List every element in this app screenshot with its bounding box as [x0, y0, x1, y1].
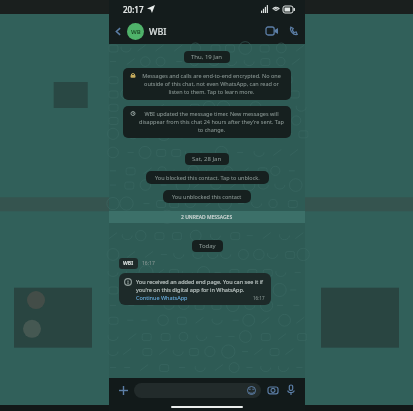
button[interactable]: Video call — [261, 18, 283, 44]
staticText: WBI updated the message timer. New messa… — [139, 110, 284, 134]
button[interactable]: You unblocked this contact — [172, 193, 242, 200]
button[interactable]: Back — [109, 18, 127, 44]
button[interactable]: WB — [127, 18, 261, 44]
staticText: 2 UNREAD MESSAGES — [181, 214, 233, 221]
staticText: 16:17 — [253, 295, 265, 301]
button[interactable]: Continue WhatsApp — [136, 294, 188, 301]
staticText: Today — [199, 242, 216, 250]
button[interactable]: Sat, 28 Jan — [192, 155, 222, 163]
staticText: Sat, 28 Jan — [192, 155, 222, 163]
button[interactable]: WBI updated the message timer. New messa… — [130, 110, 284, 134]
button[interactable] — [134, 383, 261, 398]
button[interactable]: You blocked this contact. Tap to unblock… — [155, 174, 260, 181]
staticText: You blocked this contact. Tap to unblock… — [155, 174, 260, 181]
button[interactable]: Voice call — [283, 18, 305, 44]
staticText: 16:17 — [142, 260, 155, 267]
staticText: You unblocked this contact — [172, 193, 242, 200]
staticText: Messages and calls are end-to-end encryp… — [139, 72, 284, 96]
button[interactable]: Messages and calls are end-to-end encryp… — [130, 72, 284, 96]
button[interactable]: Thu, 19 Jan — [191, 53, 223, 61]
button[interactable]: Attach — [115, 382, 131, 398]
staticText: 20:17 — [123, 4, 144, 15]
button[interactable]: Today — [199, 242, 216, 250]
button[interactable]: Voice message — [283, 382, 299, 398]
staticText: Thu, 19 Jan — [191, 53, 223, 61]
staticText: WB — [131, 28, 141, 36]
button[interactable]: Camera — [265, 382, 281, 398]
button[interactable]: You received an added end page. You can … — [124, 278, 265, 301]
staticText: WBI — [149, 25, 167, 37]
staticText: You received an added end page. You can … — [136, 278, 265, 294]
staticText: WBI — [123, 260, 134, 267]
